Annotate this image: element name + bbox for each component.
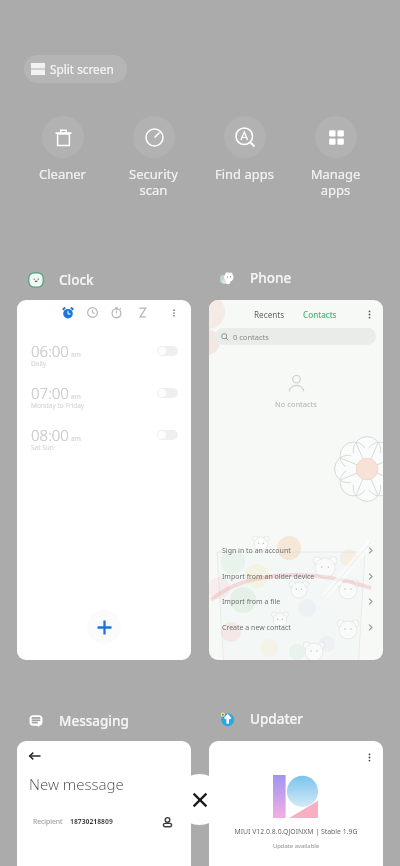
staticText: MIUI V12.0.8.0.QJOINXM | Stable 1.9G	[209, 827, 383, 836]
button[interactable]: Create a new contact	[209, 617, 383, 638]
staticText: Updater	[250, 710, 304, 728]
staticText: am	[71, 350, 81, 359]
button[interactable]: 06:00	[17, 341, 191, 375]
button[interactable]: 07:00	[17, 383, 191, 417]
staticText: 07:00	[31, 383, 69, 403]
button[interactable]: Recents	[209, 300, 383, 660]
staticText: Create a new contact	[222, 623, 291, 633]
other: Pick contact	[162, 817, 173, 828]
staticText: Update available	[209, 842, 383, 850]
staticText: No contacts	[209, 399, 383, 409]
staticText: 08:00	[31, 425, 69, 445]
button[interactable]: Manage apps	[290, 116, 381, 198]
staticText: Phone	[250, 269, 292, 287]
button[interactable]: Toggle alarm	[157, 388, 178, 398]
staticText: 06:00	[31, 341, 69, 361]
button[interactable]: 08:00	[17, 425, 191, 459]
button[interactable]: Back	[17, 741, 191, 866]
button[interactable]: 06:00	[17, 300, 191, 660]
button[interactable]: Find apps	[199, 116, 290, 183]
button[interactable]: Toggle alarm	[157, 346, 178, 356]
staticText: Sat Sun	[31, 443, 54, 452]
staticText: Recents	[254, 309, 285, 320]
staticText: 0 contacts	[233, 332, 269, 342]
staticText: Recipient	[33, 817, 63, 826]
staticText: Import from an older device	[222, 572, 315, 582]
staticText: Sign in to an account	[222, 546, 291, 556]
staticText: am	[71, 392, 81, 401]
button[interactable]: 0 contacts	[215, 328, 376, 345]
staticText: Import from a file	[222, 597, 281, 607]
button[interactable]: Split screen	[24, 55, 127, 83]
other: More options	[364, 752, 375, 763]
other: Back	[29, 750, 41, 762]
staticText: Messaging	[59, 712, 129, 730]
button[interactable]: Add alarm	[87, 610, 121, 644]
staticText: 18730218809	[70, 817, 113, 826]
staticText: Cleaner	[17, 165, 108, 183]
staticText: Monday to Friday	[31, 401, 85, 410]
button[interactable]: Messaging	[27, 711, 129, 730]
staticText: Daily	[31, 359, 47, 368]
staticText: Clock	[59, 271, 94, 289]
staticText: Security scan	[108, 165, 199, 198]
button[interactable]: Cleaner	[17, 116, 108, 183]
button[interactable]: Sign in to an account	[209, 540, 383, 561]
button[interactable]: Clock	[27, 270, 94, 289]
button[interactable]: Security scan	[108, 116, 199, 198]
button[interactable]: Import from an older device	[209, 566, 383, 587]
staticText: Split screen	[50, 61, 114, 77]
button[interactable]: Phone	[218, 268, 292, 287]
staticText: Manage apps	[290, 165, 381, 198]
button[interactable]: Updater	[218, 709, 304, 728]
staticText: am	[71, 434, 81, 443]
button[interactable]: Close all apps	[174, 774, 225, 825]
staticText: Find apps	[199, 165, 290, 183]
button[interactable]: Toggle alarm	[157, 430, 178, 440]
staticText: Contacts	[303, 309, 337, 320]
button[interactable]: More options	[209, 741, 383, 866]
staticText: New message	[29, 774, 124, 794]
button[interactable]: Import from a file	[209, 591, 383, 612]
